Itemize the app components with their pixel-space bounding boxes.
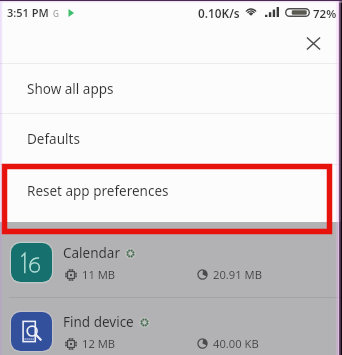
button[interactable]: Find device <box>0 305 342 355</box>
button[interactable]: Close <box>300 30 327 57</box>
staticText: 0.10K/s <box>198 5 240 21</box>
staticText: Show all apps <box>27 80 114 98</box>
button[interactable]: Reset app preferences <box>0 165 342 222</box>
staticText: 3:51 PM <box>7 5 49 20</box>
button[interactable]: Defaults <box>0 114 342 164</box>
staticText: G <box>53 8 59 19</box>
staticText: Reset app preferences <box>27 182 169 200</box>
button[interactable]: Calendar <box>0 236 342 305</box>
staticText: Defaults <box>27 130 80 148</box>
staticText: 11 MB <box>82 267 116 282</box>
staticText: 20.91 MB <box>213 267 262 282</box>
staticText: Find device <box>63 313 134 331</box>
staticText: 72% <box>313 6 337 22</box>
staticText: 12 MB <box>82 336 116 351</box>
staticText: Calendar <box>63 244 120 262</box>
button[interactable]: Show all apps <box>0 64 342 113</box>
staticText: 40.00 KB <box>213 336 259 351</box>
